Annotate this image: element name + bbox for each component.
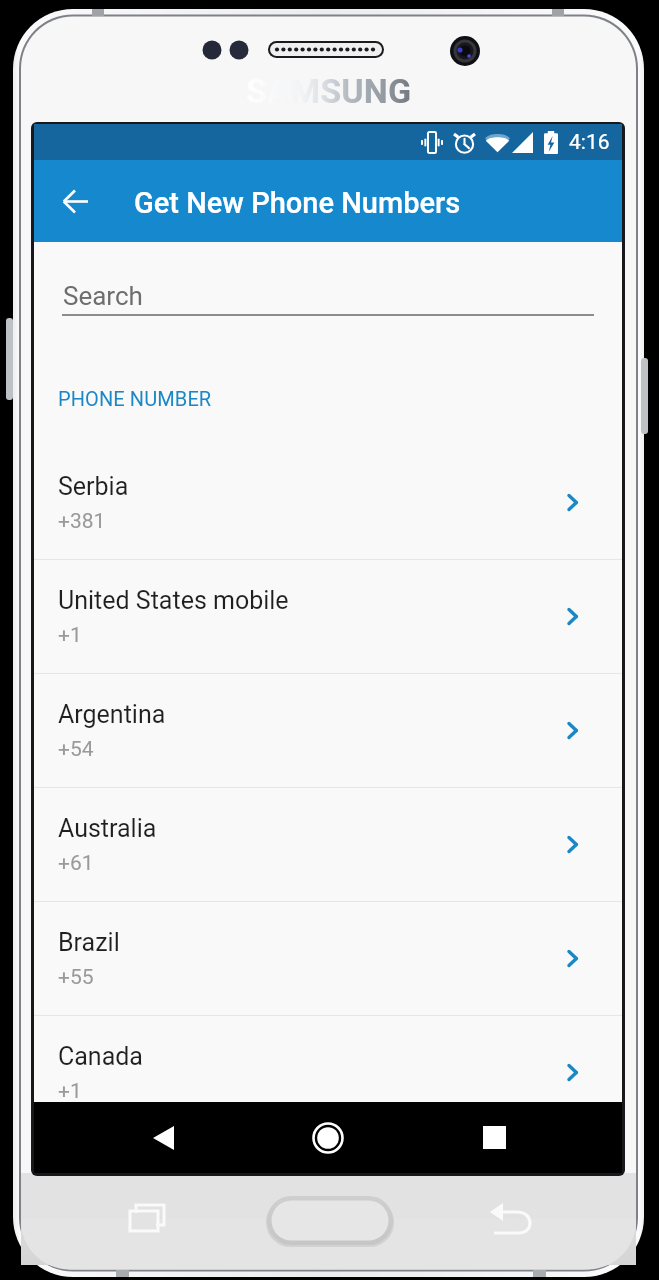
button[interactable]: Back	[49, 175, 101, 227]
button[interactable]: Argentina	[34, 674, 622, 787]
button[interactable]: Brazil	[34, 902, 622, 1015]
button[interactable]: Canada	[34, 1016, 622, 1129]
staticText: Get New Phone Numbers	[134, 186, 461, 220]
staticText: +381	[58, 509, 106, 534]
staticText: Argentina	[58, 700, 166, 729]
button[interactable]: Back	[129, 1102, 198, 1173]
staticText: Australia	[58, 814, 157, 843]
staticText: Brazil	[58, 928, 120, 957]
button[interactable]: Serbia	[34, 446, 622, 559]
staticText: United States mobile	[58, 586, 289, 615]
button[interactable]: Australia	[34, 788, 622, 901]
button[interactable]: Search	[34, 242, 622, 319]
staticText: +1	[58, 1079, 82, 1104]
button[interactable]: United States mobile	[34, 560, 622, 673]
staticText: Serbia	[58, 472, 129, 501]
staticText: PHONE NUMBER	[58, 387, 212, 410]
staticText: 4:16	[569, 130, 610, 155]
staticText: Canada	[58, 1042, 143, 1071]
staticText: Search	[63, 281, 143, 311]
staticText: +61	[58, 851, 94, 876]
staticText: SAMSUNG	[246, 71, 412, 103]
staticText: +1	[58, 623, 82, 648]
staticText: +54	[58, 737, 94, 762]
button[interactable]: Home	[293, 1102, 363, 1173]
staticText: +55	[58, 965, 94, 990]
button[interactable]: Recent apps	[459, 1102, 529, 1173]
